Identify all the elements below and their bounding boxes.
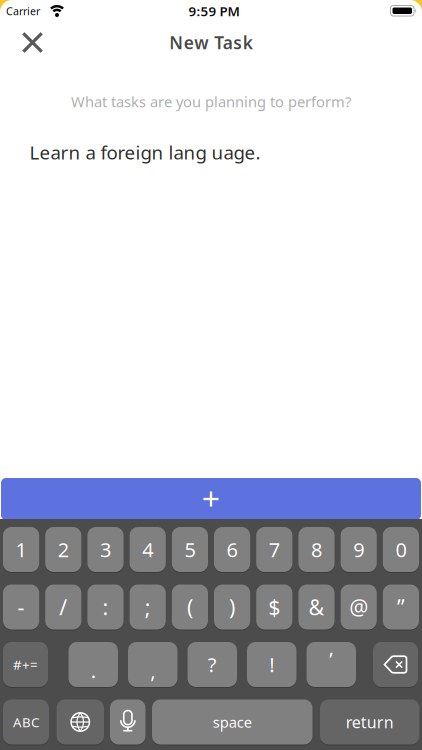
- button[interactable]: #+=: [3, 642, 48, 687]
- staticText: !: [269, 651, 274, 678]
- staticText: ABC: [13, 713, 39, 731]
- staticText: 1: [16, 536, 27, 563]
- button[interactable]: 4: [130, 527, 166, 572]
- staticText: ”: [397, 593, 405, 621]
- staticText: .: [91, 657, 96, 684]
- button[interactable]: Add Task: [1, 478, 421, 520]
- button[interactable]: !: [247, 642, 296, 687]
- staticText: 2: [58, 536, 69, 563]
- button[interactable]: Delete: [373, 642, 418, 687]
- staticText: ,: [150, 657, 155, 684]
- button[interactable]: ”: [383, 584, 419, 629]
- button[interactable]: 2: [45, 527, 81, 572]
- staticText: 0: [395, 536, 406, 563]
- button[interactable]: ?: [187, 642, 237, 687]
- staticText: What tasks are you planning to perform?: [71, 92, 351, 111]
- button[interactable]: $: [256, 584, 292, 629]
- staticText: 3: [100, 536, 111, 563]
- button[interactable]: 9: [341, 527, 377, 572]
- button[interactable]: -: [3, 584, 39, 629]
- staticText: space: [213, 712, 252, 732]
- button[interactable]: Next keyboard: [56, 699, 104, 744]
- button[interactable]: return: [320, 699, 419, 744]
- staticText: ?: [208, 651, 217, 678]
- staticText: 4: [142, 536, 153, 563]
- staticText: 8: [311, 536, 322, 563]
- staticText: Learn a foreign lang uage.: [29, 140, 260, 165]
- button[interactable]: 6: [214, 527, 250, 572]
- button[interactable]: @: [341, 584, 377, 629]
- staticText: @: [349, 593, 368, 621]
- button[interactable]: 3: [87, 527, 124, 572]
- staticText: return: [346, 711, 394, 733]
- button[interactable]: 1: [3, 527, 39, 572]
- staticText: ;: [145, 593, 151, 621]
- button[interactable]: /: [45, 584, 81, 629]
- staticText: #+=: [13, 656, 38, 673]
- button[interactable]: 8: [298, 527, 335, 572]
- staticText: $: [268, 593, 280, 621]
- button[interactable]: .: [68, 642, 118, 687]
- button[interactable]: :: [87, 584, 124, 629]
- staticText: (: [187, 593, 193, 621]
- staticText: 5: [184, 536, 195, 563]
- button[interactable]: 5: [172, 527, 208, 572]
- button[interactable]: ,: [128, 642, 177, 687]
- staticText: New Task: [169, 31, 253, 54]
- button[interactable]: space: [152, 699, 312, 744]
- staticText: 9:59 PM: [188, 2, 239, 20]
- button[interactable]: ;: [130, 584, 166, 629]
- button[interactable]: Dictate: [110, 699, 145, 744]
- button[interactable]: Close: [15, 25, 50, 60]
- staticText: Carrier: [6, 4, 40, 18]
- button[interactable]: 0: [383, 527, 419, 572]
- staticText: /: [59, 593, 67, 621]
- staticText: -: [18, 593, 25, 621]
- staticText: 6: [227, 536, 238, 563]
- staticText: :: [102, 593, 108, 621]
- button[interactable]: ): [214, 584, 250, 629]
- staticText: 7: [269, 536, 280, 563]
- button[interactable]: ’: [306, 642, 356, 687]
- staticText: &: [308, 593, 324, 621]
- button[interactable]: ABC: [3, 699, 49, 744]
- button[interactable]: (: [172, 584, 208, 629]
- staticText: ’: [329, 646, 333, 672]
- button[interactable]: &: [298, 584, 335, 629]
- button[interactable]: 7: [256, 527, 292, 572]
- staticText: 9: [353, 536, 364, 563]
- staticText: ): [229, 593, 235, 621]
